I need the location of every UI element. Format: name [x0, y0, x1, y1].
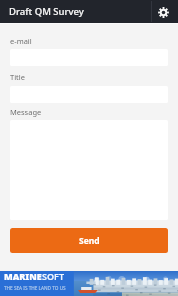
- button[interactable]: Settings: [151, 0, 175, 23]
- staticText: THE SEA IS THE LAND TO US: [4, 285, 66, 291]
- staticText: e-mail: [10, 36, 32, 46]
- staticText: SOFT: [42, 270, 64, 282]
- staticText: MARINE: [4, 270, 42, 282]
- button[interactable]: Send: [10, 228, 168, 253]
- staticText: Message: [10, 107, 42, 117]
- staticText: Title: [10, 72, 25, 82]
- staticText: Send: [79, 235, 100, 247]
- staticText: Draft QM Survey: [9, 5, 84, 18]
- button[interactable]: Advertisement: Marinesoft: [0, 271, 178, 296]
